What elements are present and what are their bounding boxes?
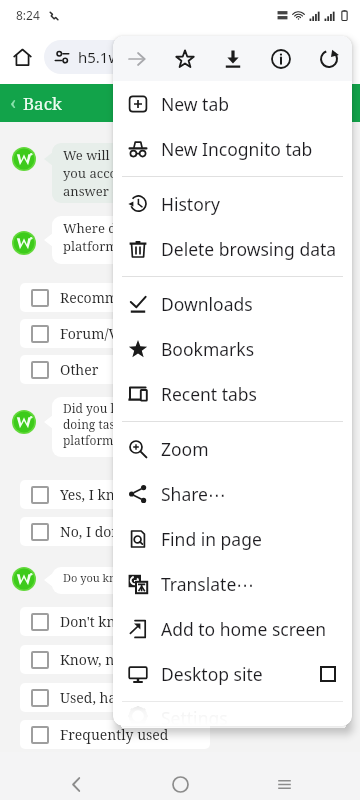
button[interactable]: Home [156, 760, 204, 800]
button[interactable]: Back [52, 760, 100, 800]
button[interactable]: Add to home screen [113, 606, 352, 651]
button[interactable]: Reload [305, 36, 352, 81]
staticText: Recent tabs [161, 382, 257, 406]
staticText: Don't know [60, 612, 136, 631]
button[interactable]: Translate⋯ [113, 561, 352, 606]
button[interactable]: Delete browsing data [113, 226, 352, 271]
staticText: Do you kno [63, 570, 123, 585]
staticText: Frequently used [60, 725, 169, 744]
staticText: Forum/Vid [60, 324, 132, 343]
button[interactable]: New tab [113, 81, 352, 126]
staticText: Recommen [60, 288, 135, 307]
staticText: Bookmarks [161, 337, 255, 361]
staticText: Share⋯ [161, 482, 226, 506]
staticText: Zoom [161, 437, 209, 461]
button[interactable]: Recent tabs [113, 371, 352, 416]
button[interactable]: Bookmark [161, 36, 209, 81]
staticText: Desktop site [161, 662, 263, 686]
staticText: Delete browsing data [161, 237, 337, 261]
button[interactable]: Home [0, 35, 44, 79]
staticText: answer can [63, 182, 135, 200]
staticText: Other [60, 360, 99, 379]
button[interactable]: Bookmarks [113, 326, 352, 371]
staticText: 8:24 [16, 7, 40, 23]
staticText: Know, neve [60, 650, 138, 669]
button[interactable]: Share⋯ [113, 471, 352, 516]
staticText: We will cu [63, 146, 128, 164]
button[interactable]: Forward [113, 36, 161, 81]
button[interactable]: Forum/Vid [20, 319, 210, 348]
staticText: Used, have [60, 688, 132, 707]
button[interactable]: h5.1w [44, 40, 344, 74]
button[interactable]: New Incognito tab [113, 126, 352, 171]
button[interactable]: Other [20, 355, 210, 384]
staticText: h5.1w [78, 47, 121, 67]
staticText: platform? [63, 432, 120, 448]
staticText: you accord [63, 164, 132, 182]
button[interactable]: Find in page [113, 516, 352, 561]
staticText: platform? [63, 237, 124, 255]
button[interactable]: Downloads [113, 281, 352, 326]
staticText: History [161, 192, 220, 216]
staticText: Where did [63, 219, 129, 237]
button[interactable]: Recent apps [260, 760, 308, 800]
staticText: New tab [161, 92, 230, 116]
button[interactable]: Know, neve [20, 645, 210, 674]
staticText: doing tasks [63, 416, 128, 432]
button[interactable]: Settings [113, 706, 352, 726]
button[interactable]: Download [209, 36, 257, 81]
staticText: Translate⋯ [161, 572, 254, 596]
staticText: Back [23, 92, 62, 115]
staticText: Downloads [161, 292, 253, 316]
button[interactable]: Zoom [113, 426, 352, 471]
button[interactable]: Frequently used [20, 720, 210, 749]
staticText: New Incognito tab [161, 137, 313, 161]
staticText: Add to home screen [161, 617, 327, 641]
staticText: ‹ [10, 90, 17, 116]
staticText: Did you kn [63, 400, 126, 416]
button[interactable]: Don't know [20, 607, 210, 636]
staticText: Yes, I know [60, 485, 135, 504]
button[interactable]: Page info [257, 36, 305, 81]
button[interactable]: No, I don't [20, 517, 210, 546]
button[interactable]: Recommen [20, 283, 210, 312]
button[interactable]: ‹ [0, 84, 360, 122]
staticText: No, I don't [60, 522, 128, 541]
button[interactable]: Desktop site [113, 651, 352, 696]
button[interactable]: History [113, 181, 352, 226]
button[interactable]: Used, have [20, 683, 210, 712]
button[interactable]: Yes, I know [20, 480, 210, 509]
staticText: Find in page [161, 527, 262, 551]
